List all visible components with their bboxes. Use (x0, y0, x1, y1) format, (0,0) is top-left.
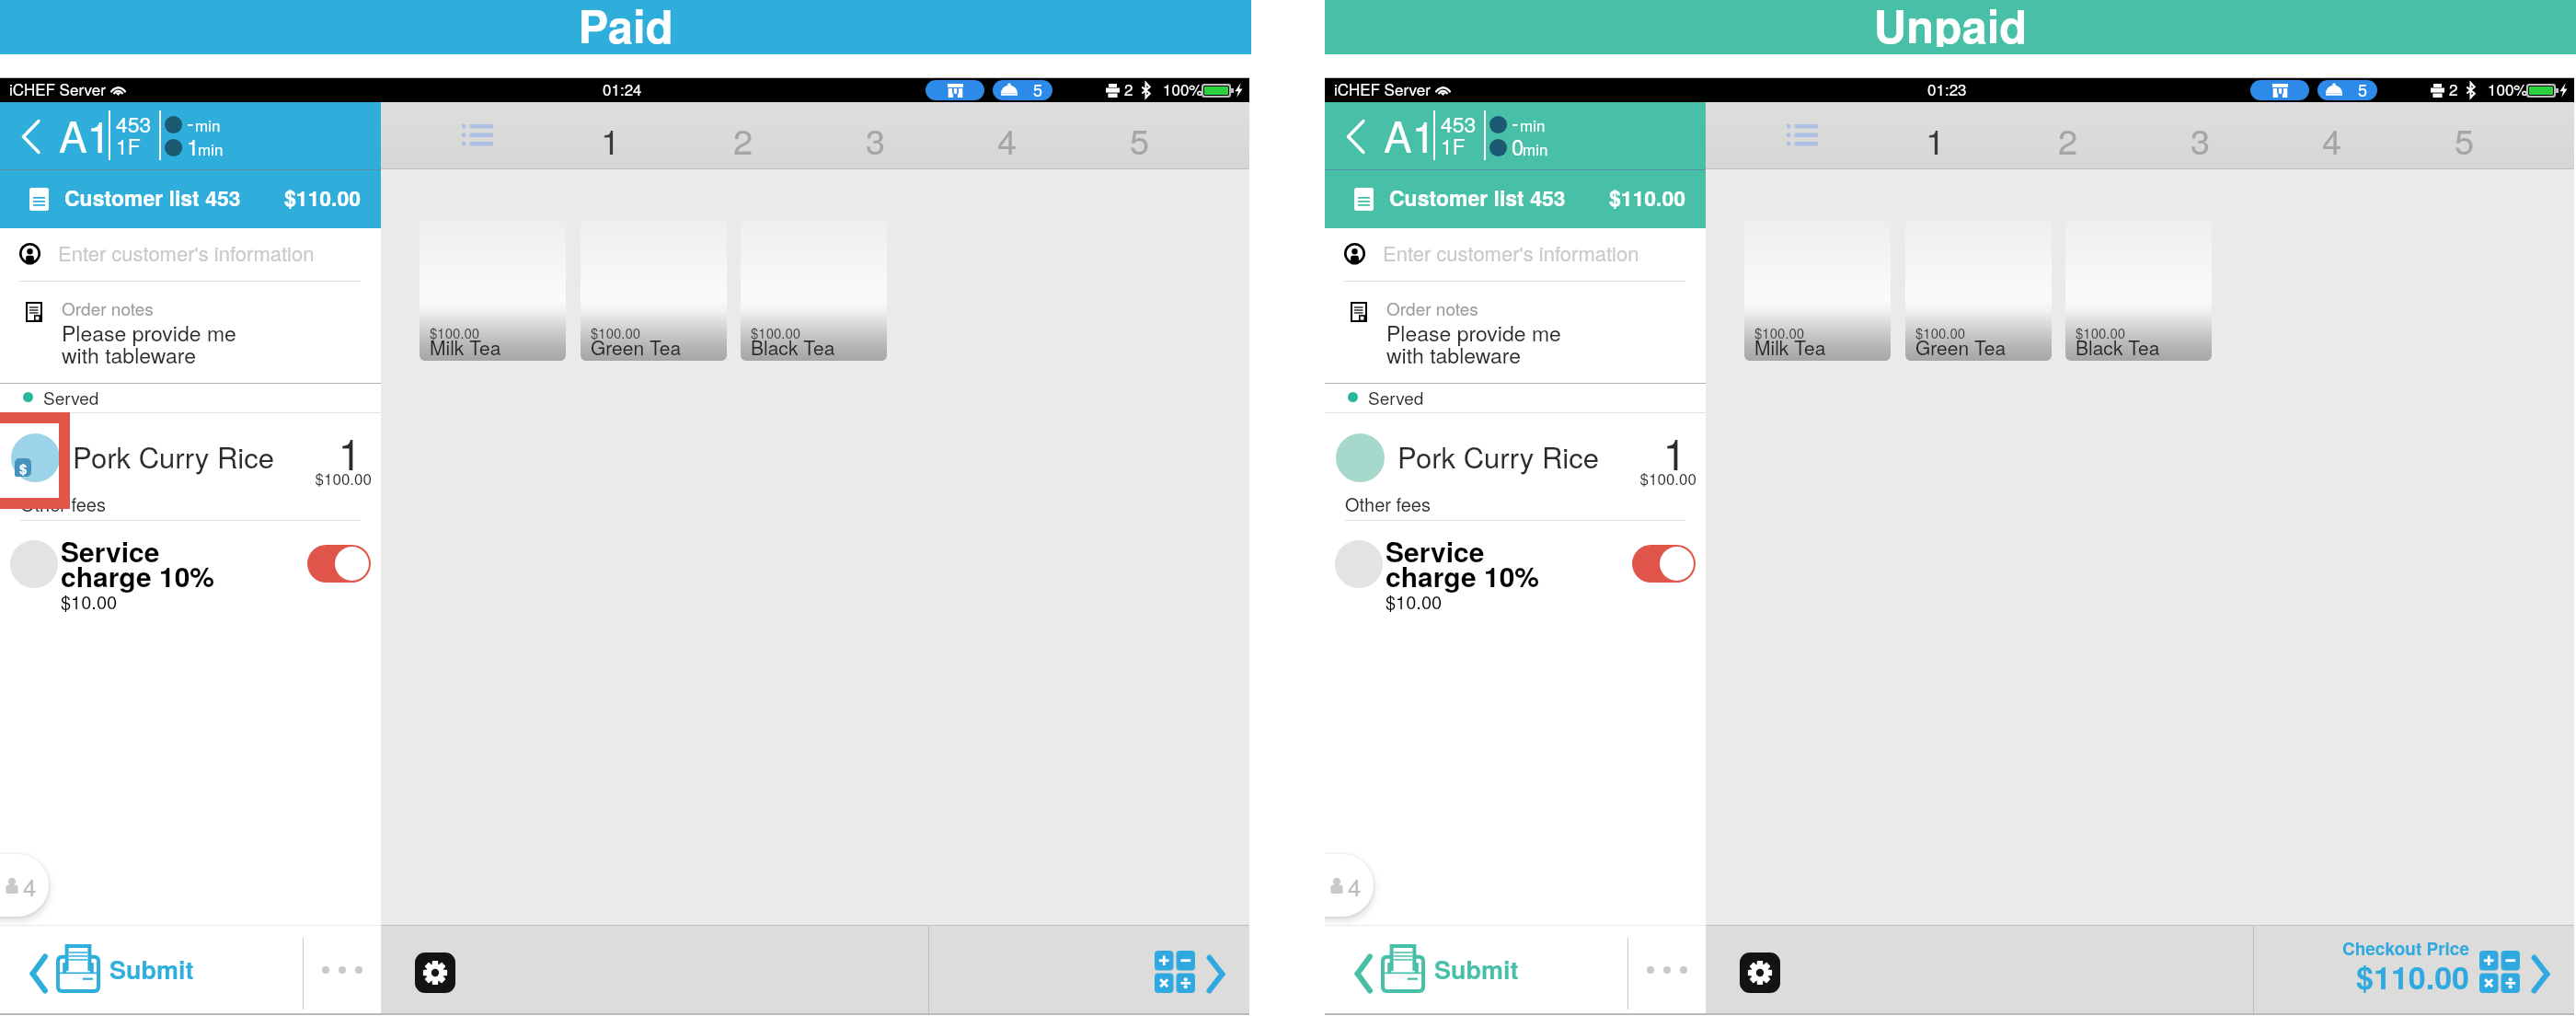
staticText: Customer list 453 (1389, 182, 1566, 213)
button[interactable] (0, 926, 303, 1013)
button[interactable]: 2 (677, 102, 810, 168)
button[interactable]: More options (1628, 926, 1706, 1013)
button[interactable] (1325, 102, 1706, 169)
staticText: Green Tea (1915, 333, 2007, 361)
staticText: $110.00 (283, 182, 361, 213)
staticText: 5 (1130, 114, 1150, 164)
staticText: Unpaid (1325, 0, 2576, 47)
staticText: Please provide me (1386, 317, 1561, 348)
staticText: Submit (109, 952, 194, 987)
staticText: Black Tea (751, 333, 835, 361)
staticText: $100.00 (1754, 323, 1805, 342)
staticText: 2 (1124, 77, 1133, 99)
staticText: Enter customer's information (1383, 238, 1639, 268)
staticText: 4 (2322, 114, 2342, 164)
staticText: Pork Curry Rice (1397, 435, 1599, 476)
button[interactable]: Settings (1740, 952, 1780, 993)
staticText: 1 (187, 130, 200, 161)
staticText: $100.00 (430, 323, 480, 342)
button[interactable] (1325, 170, 1706, 228)
staticText: A1 (1384, 104, 1436, 165)
staticText: Please provide me (62, 317, 236, 348)
staticText: $100.00 (751, 323, 801, 342)
staticText: $100.00 (591, 323, 641, 342)
staticText: 4 (997, 114, 1018, 164)
other: Back (22, 120, 40, 154)
staticText: $10.00 (1386, 588, 1443, 615)
staticText: - (187, 108, 194, 137)
button[interactable] (929, 926, 1249, 1013)
staticText: with tableware (62, 340, 197, 370)
button[interactable]: 1 (1869, 102, 2002, 168)
staticText: $100.00 (315, 467, 372, 489)
staticText: A1 (59, 104, 111, 165)
staticText: Customer list 453 (64, 182, 241, 213)
staticText: 453 (1441, 109, 1477, 139)
button[interactable]: $100.00 (420, 211, 566, 361)
staticText: iCHEF Server (1334, 77, 1431, 99)
button[interactable]: 1 (545, 102, 677, 168)
button[interactable]: $100.00 (581, 211, 727, 361)
staticText: Black Tea (2076, 333, 2160, 361)
button[interactable]: List view (381, 102, 574, 168)
button[interactable]: $100.00 (741, 211, 887, 361)
button[interactable] (1325, 926, 1627, 1013)
button[interactable]: $100.00 (2065, 211, 2212, 361)
button[interactable] (0, 282, 381, 383)
button[interactable] (1325, 228, 1706, 281)
other: Back (1347, 120, 1364, 154)
button[interactable]: 5 (2398, 102, 2531, 168)
button[interactable]: 4 (941, 102, 1074, 168)
button[interactable] (1325, 282, 1706, 383)
staticText: min (1520, 113, 1546, 135)
button[interactable] (1632, 545, 1696, 583)
staticText: 01:23 (1927, 77, 1967, 99)
button[interactable] (2254, 926, 2574, 1013)
staticText: 5 (1033, 80, 1043, 98)
staticText: $110.00 (2356, 954, 2469, 999)
button[interactable] (307, 545, 371, 583)
staticText: Other fees (20, 491, 106, 517)
staticText: $10.00 (61, 588, 118, 615)
staticText: 100% (2488, 77, 2528, 99)
button[interactable]: 5 (1074, 102, 1206, 168)
staticText: Service (1386, 531, 1485, 571)
button[interactable] (0, 521, 381, 622)
staticText: 3 (866, 114, 886, 164)
staticText: min (195, 113, 221, 135)
button[interactable]: 3 (2134, 102, 2267, 168)
button[interactable]: List view (1706, 102, 1899, 168)
staticText: 2 (2058, 114, 2078, 164)
staticText: - (1512, 108, 1519, 137)
button[interactable]: More options (304, 926, 381, 1013)
staticText: 5 (2358, 80, 2368, 98)
staticText: 1 (338, 421, 362, 482)
staticText: 2 (2449, 77, 2458, 99)
staticText: 4 (1348, 869, 1362, 903)
staticText: 453 (116, 109, 152, 139)
staticText: Served (43, 385, 99, 410)
button[interactable] (1325, 413, 1706, 483)
staticText: 1 (601, 114, 621, 164)
staticText: Checkout Price (2341, 936, 2469, 961)
button[interactable]: $100.00 (1744, 211, 1891, 361)
button[interactable]: 2 (2002, 102, 2134, 168)
staticText: Paid (0, 0, 1251, 47)
staticText: 100% (1163, 77, 1203, 99)
button[interactable]: Settings (415, 952, 455, 993)
button[interactable] (0, 102, 381, 169)
button[interactable] (0, 413, 381, 483)
staticText: iCHEF Server (9, 77, 106, 99)
staticText: 5 (2455, 114, 2475, 164)
button[interactable]: 3 (810, 102, 942, 168)
button[interactable]: $100.00 (1905, 211, 2052, 361)
button[interactable]: 4 (2266, 102, 2398, 168)
staticText: Other fees (1345, 491, 1431, 517)
button[interactable] (1325, 521, 1706, 622)
staticText: $110.00 (1608, 182, 1685, 213)
button[interactable] (0, 170, 381, 228)
staticText: charge 10% (1386, 556, 1540, 595)
staticText: 2 (733, 114, 753, 164)
staticText: 1 (1926, 114, 1946, 164)
button[interactable] (0, 228, 381, 281)
